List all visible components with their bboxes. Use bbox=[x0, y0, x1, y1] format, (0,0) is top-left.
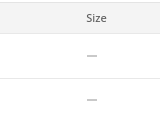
button[interactable]: Size bbox=[0, 2, 160, 33]
staticText: Size bbox=[86, 10, 107, 25]
